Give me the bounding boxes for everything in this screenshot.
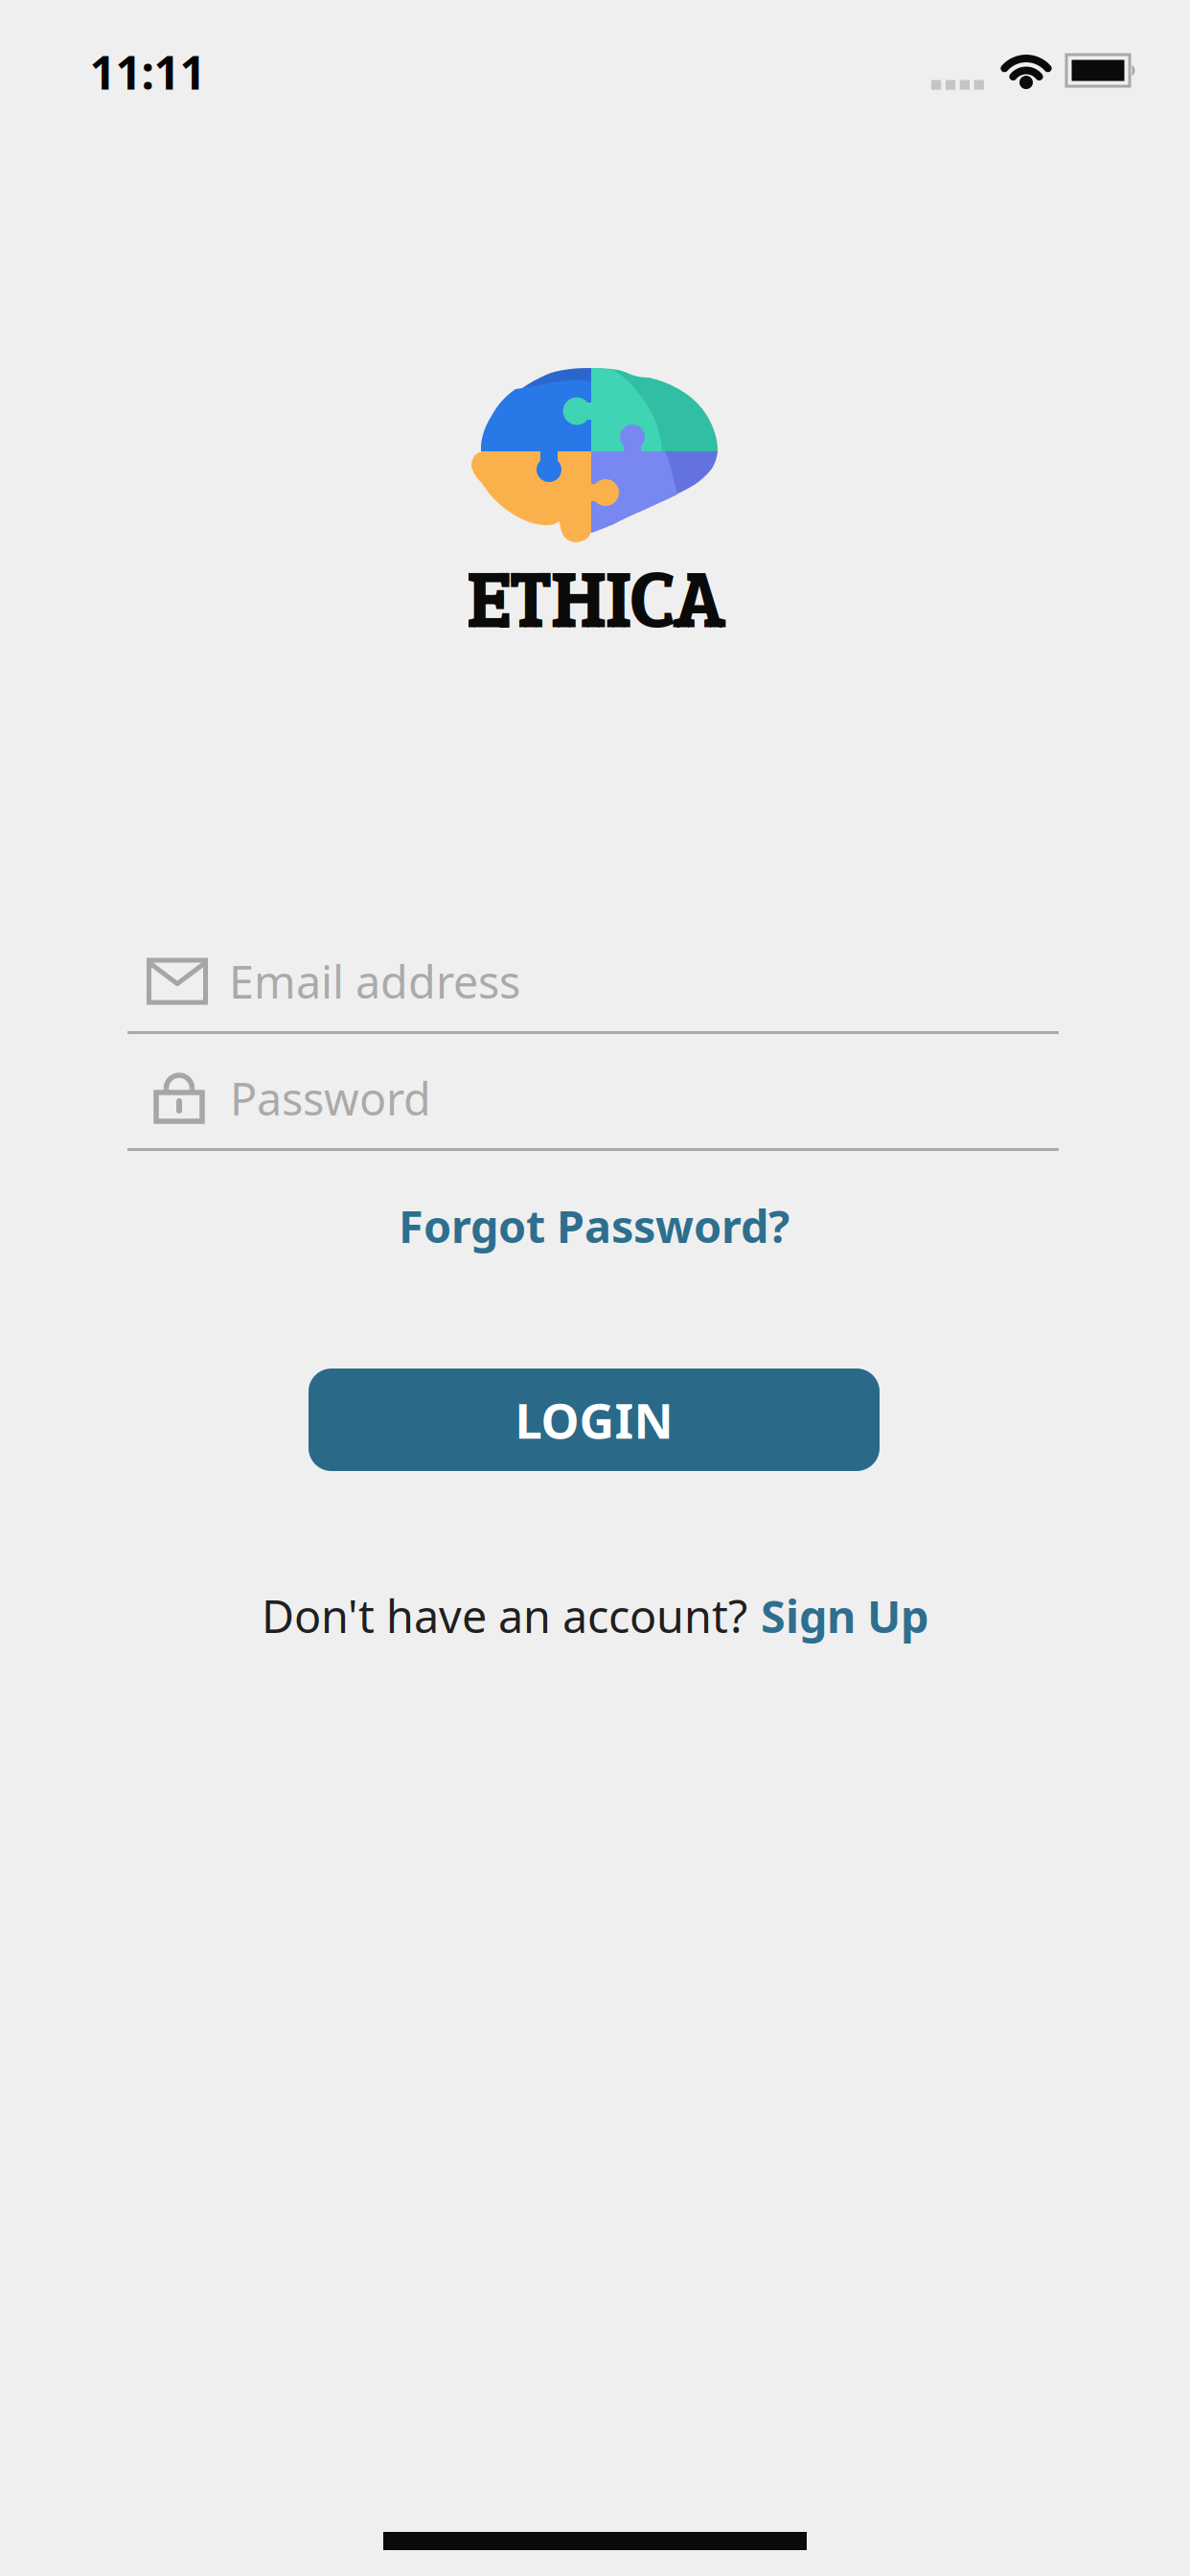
button[interactable]: Email address bbox=[127, 935, 1059, 1027]
staticText: Don't have an account? bbox=[262, 1586, 747, 1645]
staticText: Forgot Password? bbox=[399, 1196, 790, 1255]
staticText: ETHICA bbox=[466, 547, 726, 653]
button[interactable]: Forgot Password? bbox=[399, 1196, 790, 1255]
staticText: Email address bbox=[229, 952, 520, 1011]
button[interactable]: Password bbox=[127, 1052, 1059, 1144]
staticText: LOGIN bbox=[515, 1388, 673, 1452]
staticText: 11:11 bbox=[90, 41, 206, 102]
button[interactable]: LOGIN bbox=[309, 1368, 880, 1471]
staticText: Password bbox=[230, 1069, 431, 1128]
staticText: Sign Up bbox=[761, 1586, 928, 1645]
button[interactable]: Sign Up bbox=[761, 1586, 928, 1645]
